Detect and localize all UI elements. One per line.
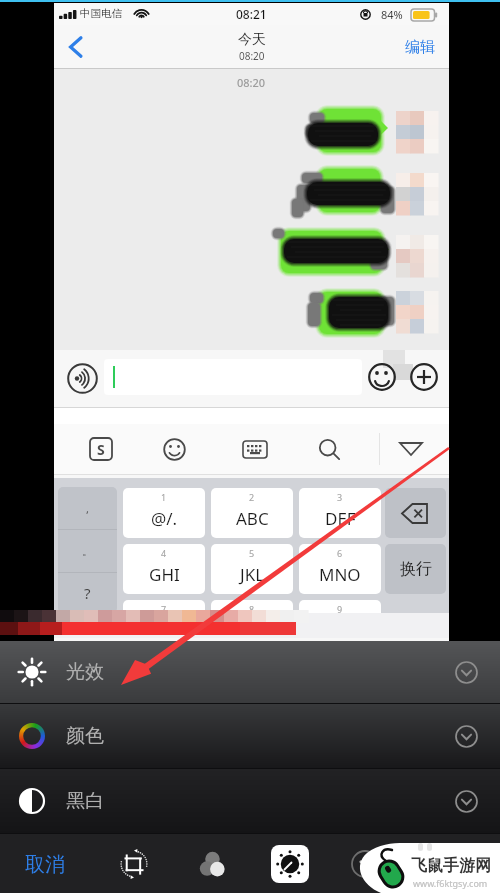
other: Expand 光效 bbox=[455, 661, 478, 684]
button[interactable]: 换行 bbox=[385, 544, 446, 594]
staticText: 换行 bbox=[400, 559, 432, 579]
button[interactable]: Voice bbox=[67, 363, 98, 394]
button[interactable]: Emoji bbox=[163, 438, 186, 461]
button[interactable]: 6 bbox=[299, 544, 381, 594]
staticText: MNO bbox=[319, 563, 361, 586]
staticText: DEF bbox=[325, 507, 356, 530]
staticText: 取消 bbox=[25, 852, 65, 877]
staticText: 08:20 bbox=[239, 49, 265, 63]
staticText: 光效 bbox=[66, 660, 104, 684]
button[interactable]: Adjust bbox=[269, 843, 311, 885]
button[interactable]: 2 bbox=[211, 488, 293, 538]
staticText: 3 bbox=[337, 491, 343, 503]
button[interactable]: Filters bbox=[190, 842, 234, 886]
button[interactable]: Back bbox=[58, 25, 92, 69]
button[interactable]: Keyboard bbox=[242, 440, 268, 459]
staticText: 5 bbox=[249, 547, 255, 559]
button[interactable]: 7 bbox=[123, 600, 205, 613]
button[interactable]: Emoji bbox=[368, 363, 396, 391]
staticText: @/. bbox=[151, 507, 178, 530]
staticText: 08:20 bbox=[237, 75, 266, 90]
staticText: S bbox=[97, 440, 105, 459]
other: Expand 黑白 bbox=[455, 790, 478, 813]
button[interactable]: 4 bbox=[123, 544, 205, 594]
staticText: 08:21 bbox=[236, 6, 267, 22]
staticText: , bbox=[86, 501, 89, 516]
staticText: ABC bbox=[236, 507, 269, 530]
staticText: JKL bbox=[240, 563, 265, 586]
button[interactable]: 编辑 bbox=[405, 38, 435, 57]
staticText: 8 bbox=[249, 603, 255, 613]
button[interactable]: 3 bbox=[299, 488, 381, 538]
button[interactable]: ? bbox=[58, 573, 117, 613]
button[interactable]: Search bbox=[318, 438, 341, 461]
staticText: 今天 bbox=[238, 31, 266, 49]
button[interactable]: More bbox=[410, 363, 438, 391]
staticText: 编辑 bbox=[405, 38, 435, 57]
button[interactable]: 9 bbox=[299, 600, 381, 613]
staticText: 飞鼠手游网 bbox=[411, 856, 491, 876]
staticText: 中国电信 bbox=[80, 7, 122, 20]
staticText: 。 bbox=[82, 544, 93, 558]
button[interactable]: 5 bbox=[211, 544, 293, 594]
staticText: 84% bbox=[381, 7, 403, 22]
button[interactable]: 1 bbox=[123, 488, 205, 538]
staticText: 9 bbox=[337, 603, 343, 613]
staticText: 黑白 bbox=[66, 789, 104, 813]
button[interactable]: Hide keyboard bbox=[399, 442, 423, 456]
staticText: GHI bbox=[149, 563, 180, 586]
staticText: 6 bbox=[337, 547, 343, 559]
button[interactable]: Sogou bbox=[89, 437, 113, 461]
staticText: 7 bbox=[161, 603, 167, 613]
button[interactable]: Backspace bbox=[385, 488, 446, 538]
button[interactable]: 光效 bbox=[0, 641, 500, 703]
staticText: 2 bbox=[249, 491, 255, 503]
staticText: 颜色 bbox=[66, 724, 104, 748]
button[interactable]: 黑白 bbox=[0, 769, 500, 833]
button[interactable]: 取消 bbox=[10, 841, 80, 887]
button[interactable]: 8 bbox=[211, 600, 293, 613]
staticText: ? bbox=[84, 583, 91, 603]
button[interactable]: Crop bbox=[112, 842, 156, 886]
button[interactable]: 颜色 bbox=[0, 704, 500, 768]
other: Expand 颜色 bbox=[455, 725, 478, 748]
staticText: 1 bbox=[161, 491, 167, 503]
staticText: www.f6ktgsy.com bbox=[413, 877, 488, 889]
staticText: 4 bbox=[161, 547, 167, 559]
button[interactable]: Markup bbox=[344, 843, 386, 885]
